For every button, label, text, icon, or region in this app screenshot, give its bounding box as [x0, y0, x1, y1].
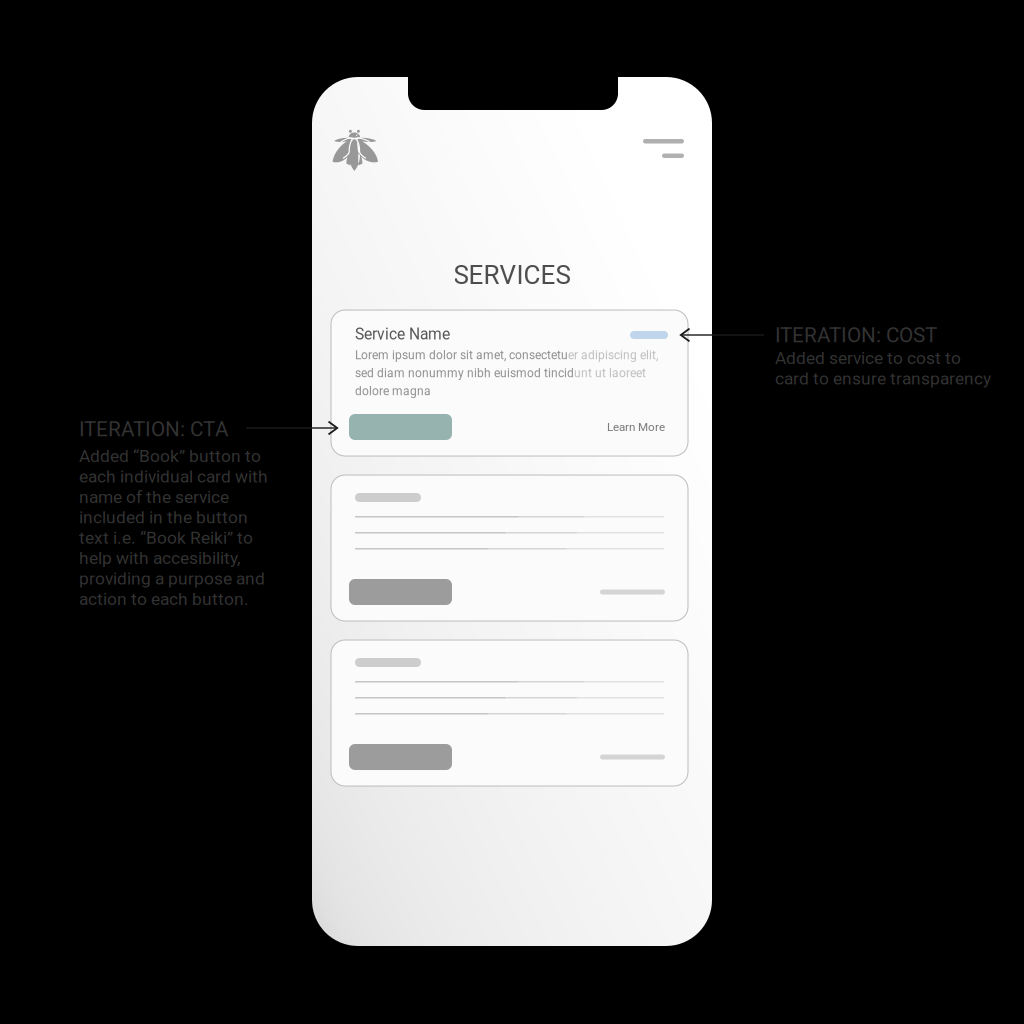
staticText: ITERATION: COST — [775, 323, 937, 347]
staticText: ITERATION: CTA — [79, 417, 228, 441]
button[interactable]: Menu — [643, 139, 684, 158]
button[interactable]: Learn More — [595, 414, 665, 440]
staticText: card to ensure transparency — [775, 368, 991, 389]
staticText: help with accesibility, — [79, 548, 240, 568]
button[interactable]: Learn More — [600, 579, 665, 605]
staticText: included in the button — [79, 507, 248, 527]
staticText: unt ut laoreet — [574, 366, 646, 380]
staticText: name of the service — [79, 487, 229, 507]
button[interactable]: Home — [332, 129, 379, 171]
staticText: Added “Book” button to — [79, 446, 261, 466]
button[interactable]: Book Service — [349, 744, 452, 770]
staticText: er adipiscing elit, — [568, 348, 658, 362]
staticText: Learn More — [607, 420, 665, 434]
button[interactable]: Book Service — [349, 414, 452, 440]
staticText: SERVICES — [453, 260, 570, 290]
staticText: text i.e. “Book Reiki” to — [79, 528, 253, 548]
staticText: providing a purpose and — [79, 568, 265, 589]
staticText: Added service to cost to — [775, 348, 961, 368]
staticText: dolore magna — [355, 384, 431, 398]
button[interactable]: Book Service — [349, 579, 452, 605]
staticText: sed diam nonummy nibh euismod tincid — [355, 366, 574, 380]
staticText: Service Name — [355, 325, 450, 343]
staticText: each individual card with — [79, 466, 268, 487]
button[interactable]: Learn More — [600, 744, 665, 770]
staticText: Lorem ipsum dolor sit amet, consectetu — [355, 348, 568, 362]
staticText: action to each button. — [79, 589, 249, 609]
